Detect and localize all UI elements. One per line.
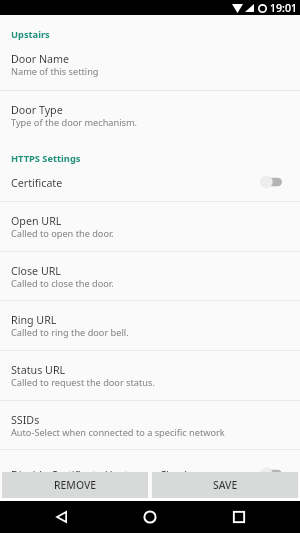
button[interactable]: Certificate xyxy=(0,164,300,202)
button[interactable]: Disable Certificate Hostname Check xyxy=(0,450,300,472)
staticText: SAVE xyxy=(213,478,238,492)
staticText: Called to ring the door bell. xyxy=(11,326,129,339)
button[interactable]: Ring URL xyxy=(0,301,300,351)
staticText: Called to open the door. xyxy=(11,227,114,240)
staticText: Name of this setting xyxy=(11,65,99,78)
button[interactable]: Back xyxy=(37,501,85,533)
button[interactable]: Recent apps xyxy=(215,501,263,533)
button[interactable]: Door Type xyxy=(0,91,300,141)
button[interactable]: Home xyxy=(126,501,174,533)
button[interactable]: SAVE xyxy=(152,472,298,498)
staticText: Auto-Select when connected to a specific… xyxy=(11,426,225,439)
staticText: Door Type xyxy=(11,103,63,118)
staticText: Called to close the door. xyxy=(11,277,114,290)
staticText: Certificate xyxy=(11,176,63,191)
staticText: Called to request the door status. xyxy=(11,376,155,389)
button[interactable]: Close URL xyxy=(0,252,300,301)
staticText: REMOVE xyxy=(54,478,97,492)
staticText: Open URL xyxy=(11,214,62,229)
button[interactable]: REMOVE xyxy=(2,472,148,498)
staticText: SSIDs xyxy=(11,413,40,428)
staticText: Type of the door mechanism. xyxy=(11,116,137,129)
staticText: 19:01 xyxy=(270,1,298,15)
staticText: Door Name xyxy=(11,52,70,67)
staticText: HTTPS Settings xyxy=(11,152,81,165)
button[interactable]: Door Name xyxy=(0,40,300,91)
staticText: Disable Certificate Hostname Check xyxy=(11,468,190,472)
staticText: Close URL xyxy=(11,264,61,279)
staticText: Upstairs xyxy=(11,28,50,41)
button[interactable]: Status URL xyxy=(0,351,300,401)
button[interactable]: SSIDs xyxy=(0,401,300,450)
staticText: Status URL xyxy=(11,363,66,378)
button[interactable]: Open URL xyxy=(0,202,300,252)
staticText: Ring URL xyxy=(11,313,57,328)
